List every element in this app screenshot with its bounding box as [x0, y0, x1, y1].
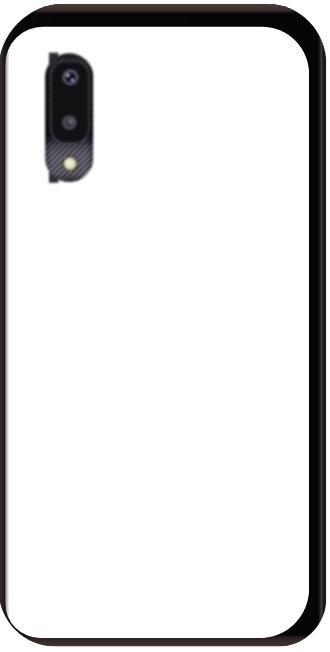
button[interactable]: Phone back cover product image [0, 0, 330, 652]
